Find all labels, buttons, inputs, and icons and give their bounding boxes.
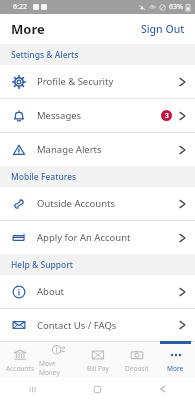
staticText: 63% <box>169 2 183 12</box>
staticText: Mobile Features <box>11 171 77 183</box>
button[interactable]: Back <box>130 378 195 400</box>
button[interactable]: Sign Out <box>131 16 195 42</box>
staticText: More <box>167 364 184 373</box>
staticText: Settings & Alerts <box>11 49 79 61</box>
staticText: Apply for An Account <box>37 231 131 244</box>
staticText: Sign Out <box>141 22 185 36</box>
button[interactable]: Bill Pay <box>78 341 117 378</box>
staticText: 3 <box>165 111 169 120</box>
staticText: 6:22 <box>13 2 27 12</box>
button[interactable]: Accounts <box>0 341 39 378</box>
button[interactable]: Recent apps <box>0 378 65 400</box>
staticText: Accounts <box>6 364 34 373</box>
button[interactable]: Outside Accounts <box>0 187 195 220</box>
staticText: Bill Pay <box>87 364 109 373</box>
staticText: Deposit <box>125 364 149 373</box>
button[interactable]: Move Money <box>39 341 78 378</box>
button[interactable]: Home <box>65 378 130 400</box>
staticText: More <box>11 20 45 38</box>
staticText: About <box>37 285 64 298</box>
button[interactable]: Profile & Security <box>0 65 195 98</box>
staticText: Manage Alerts <box>37 143 102 156</box>
button[interactable]: About <box>0 275 195 308</box>
staticText: Move Money <box>39 359 78 377</box>
staticText: Messages <box>37 109 82 122</box>
staticText: Help & Support <box>11 259 74 271</box>
staticText: Outside Accounts <box>37 197 116 210</box>
button[interactable]: Deposit <box>117 341 156 378</box>
staticText: Profile & Security <box>37 75 114 88</box>
button[interactable]: Apply for An Account <box>0 221 195 254</box>
staticText: Contact Us / FAQs <box>37 319 117 332</box>
button[interactable]: Messages <box>0 99 195 132</box>
button[interactable]: Contact Us / FAQs <box>0 309 195 341</box>
button[interactable]: More <box>156 341 195 378</box>
button[interactable]: Manage Alerts <box>0 133 195 166</box>
